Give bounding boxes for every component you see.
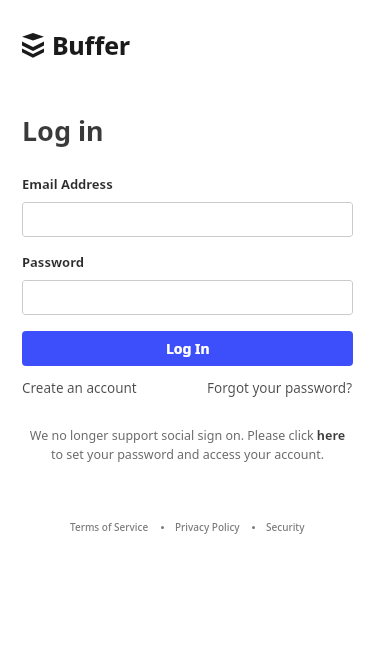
- button[interactable]: Email Address input: [22, 202, 353, 237]
- staticText: We no longer support social sign on. Ple…: [24, 427, 351, 463]
- button[interactable]: We no longer support social sign on. Ple…: [24, 427, 351, 463]
- staticText: Email Address: [22, 175, 113, 193]
- staticText: Forgot your password?: [207, 379, 353, 397]
- staticText: Privacy Policy: [175, 520, 240, 534]
- button[interactable]: Log In: [22, 331, 353, 366]
- other: Buffer logo: [22, 33, 44, 57]
- staticText: Terms of Service: [70, 520, 149, 534]
- staticText: Buffer: [52, 28, 130, 62]
- button[interactable]: Password input: [22, 280, 353, 315]
- staticText: Password: [22, 253, 84, 271]
- staticText: Log in: [22, 112, 104, 149]
- staticText: Security: [266, 520, 305, 534]
- button[interactable]: Forgot your password?: [207, 379, 353, 397]
- button[interactable]: Buffer logo: [22, 28, 130, 62]
- staticText: Create an account: [22, 379, 137, 397]
- button[interactable]: Privacy Policy: [173, 520, 242, 534]
- button[interactable]: Security: [264, 520, 307, 534]
- staticText: Log In: [166, 339, 210, 358]
- button[interactable]: Terms of Service: [68, 520, 151, 534]
- button[interactable]: Create an account: [22, 379, 137, 397]
